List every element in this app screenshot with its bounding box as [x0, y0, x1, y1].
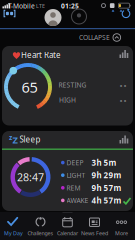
staticText: HIGH [59, 95, 76, 104]
staticText: More [115, 230, 128, 237]
staticText: My Day [4, 230, 23, 237]
staticText: Heart Rate [21, 50, 61, 60]
staticText: 28:47 [17, 170, 44, 184]
staticText: - - [120, 95, 126, 104]
staticText: 9h 57m [92, 182, 122, 193]
button[interactable]: z [2, 131, 133, 211]
staticText: DEEP [67, 158, 84, 167]
button[interactable]: Challenges [27, 214, 54, 240]
staticText: z [9, 133, 12, 142]
button[interactable]: Heart Rate [2, 46, 133, 125]
staticText: RESTING [58, 80, 86, 89]
staticText: Calendar [57, 230, 78, 237]
staticText: REM [67, 183, 81, 192]
staticText: 4h 57m [92, 195, 122, 206]
staticText: T-Mobile [8, 1, 35, 10]
staticText: 65 [21, 77, 37, 97]
button[interactable]: Sleep details [119, 135, 128, 143]
button[interactable]: Connected device [71, 9, 86, 24]
button[interactable]: Sync [120, 8, 131, 19]
button[interactable]: Profile [44, 9, 61, 26]
button[interactable]: More [108, 214, 135, 240]
staticText: LTE [36, 2, 45, 9]
button[interactable]: COLLAPSE [79, 31, 121, 43]
staticText: 3h 5m [92, 157, 117, 168]
button[interactable]: Devices [3, 8, 16, 18]
button[interactable]: Heart rate details [119, 50, 128, 58]
staticText: AWAKE [67, 196, 89, 205]
staticText: COLLAPSE [79, 33, 110, 42]
staticText: Z [12, 134, 17, 146]
button[interactable]: Calendar [54, 214, 81, 240]
staticText: News Feed [81, 230, 108, 237]
button[interactable]: My Day [0, 214, 27, 240]
staticText: - - [120, 80, 126, 89]
button[interactable]: News Feed [81, 214, 108, 240]
staticText: Sleep [19, 134, 40, 145]
staticText: LIGHT [67, 171, 86, 180]
staticText: Challenges [27, 230, 53, 237]
staticText: 01:25 [61, 1, 79, 10]
staticText: 9h 29m [92, 170, 122, 181]
